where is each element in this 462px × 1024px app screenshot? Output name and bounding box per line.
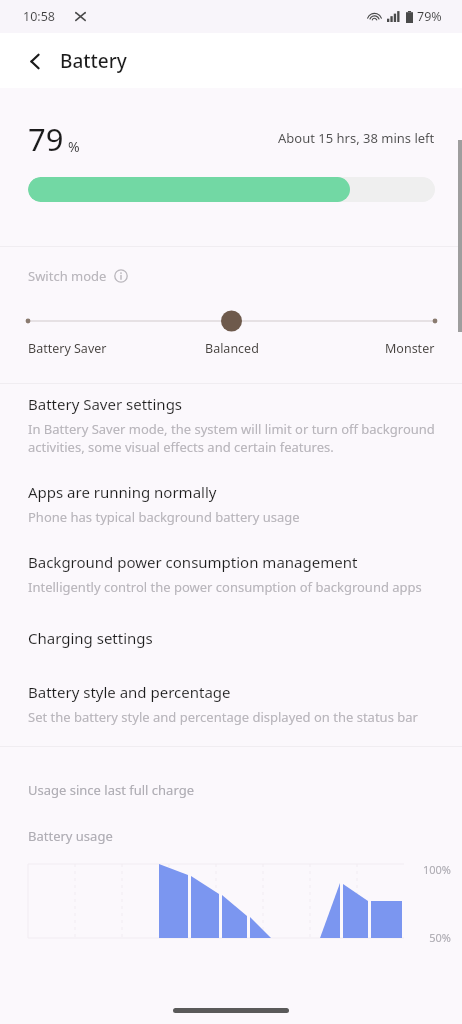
staticText: About 15 hrs, 38 mins left <box>278 129 435 147</box>
staticText: 10:58 <box>23 8 55 25</box>
staticText: Phone has typical background battery usa… <box>28 508 300 526</box>
staticText: Charging settings <box>28 628 153 648</box>
staticText: Balanced <box>205 340 259 357</box>
button[interactable]: Charging settings <box>0 628 462 648</box>
staticText: Switch mode <box>28 267 107 285</box>
button[interactable]: Battery Saver settings <box>0 394 462 456</box>
button[interactable]: Background power consumption management <box>0 552 462 596</box>
button[interactable]: Switch mode <box>28 267 128 285</box>
button[interactable]: Battery style and percentage <box>0 682 462 726</box>
button[interactable]: Back <box>18 44 52 78</box>
staticText: 79% <box>417 8 442 25</box>
staticText: Battery <box>60 48 127 74</box>
staticText: Battery style and percentage <box>28 682 231 702</box>
staticText: Apps are running normally <box>28 482 217 502</box>
button[interactable] <box>0 310 462 332</box>
staticText: 50% <box>429 930 451 945</box>
staticText: % <box>68 137 80 156</box>
staticText: Battery Saver <box>28 340 107 357</box>
button[interactable]: Apps are running normally <box>0 482 462 526</box>
staticText: 100% <box>422 862 451 877</box>
staticText: Background power consumption management <box>28 552 358 572</box>
staticText: In Battery Saver mode, the system will l… <box>28 420 435 456</box>
staticText: Battery Saver settings <box>28 394 183 414</box>
staticText: Battery usage <box>28 827 113 845</box>
staticText: Monster <box>385 340 435 357</box>
staticText: Set the battery style and percentage dis… <box>28 708 418 726</box>
staticText: 79 <box>28 118 64 160</box>
staticText: Intelligently control the power consumpt… <box>28 578 422 596</box>
staticText: Usage since last full charge <box>28 781 194 799</box>
